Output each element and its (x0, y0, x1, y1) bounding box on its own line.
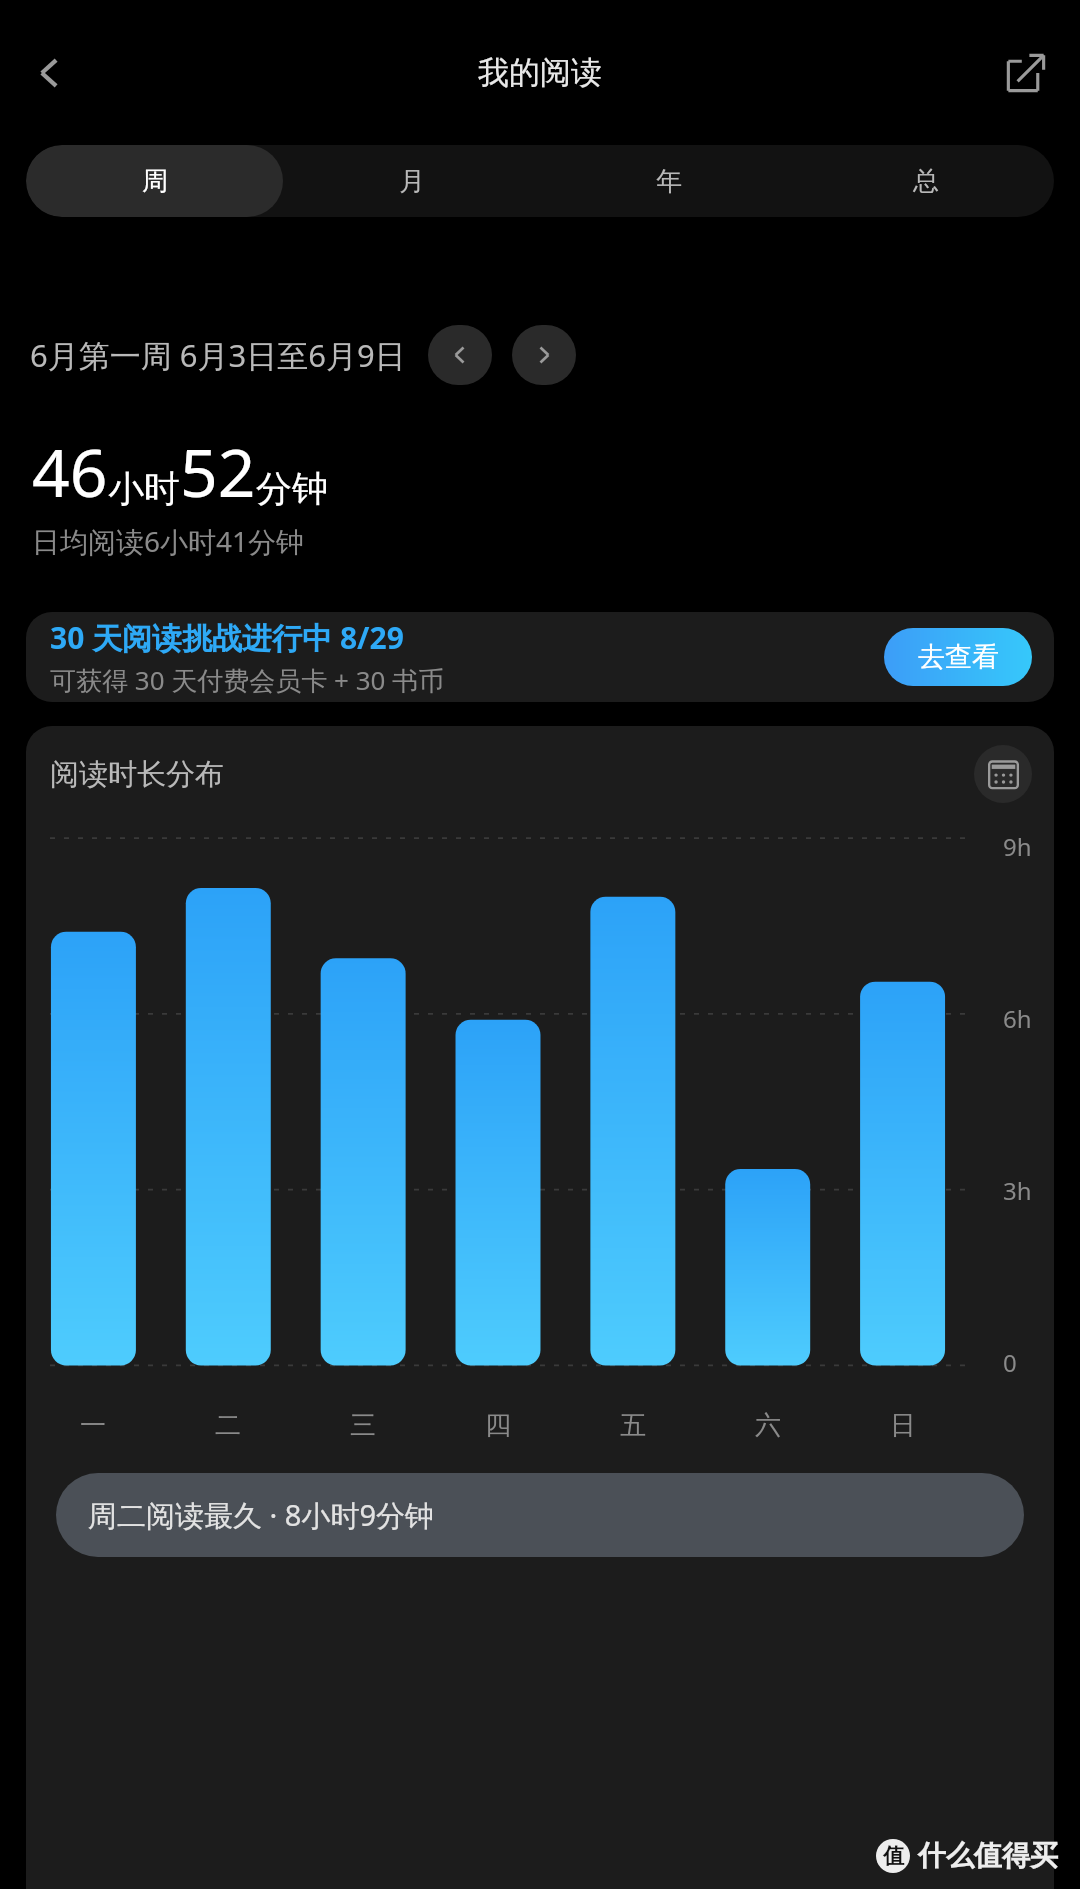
staticText: 6h (1003, 1002, 1032, 1035)
staticText: 二 (215, 1409, 241, 1442)
staticText: 我的阅读 (478, 53, 602, 92)
staticText: 30 天阅读挑战进行中 8/29 (50, 617, 404, 658)
staticText: 3h (1003, 1174, 1032, 1207)
button[interactable]: Back (14, 37, 86, 109)
staticText: 周 (142, 165, 168, 198)
button[interactable]: 总 (797, 145, 1054, 217)
button[interactable]: Previous week (428, 325, 492, 385)
staticText: 去查看 (918, 640, 999, 674)
staticText: 月 (399, 165, 425, 198)
staticText: 三 (350, 1409, 376, 1442)
staticText: 年 (656, 165, 682, 198)
staticText: 周二阅读最久 · 8小时9分钟 (88, 1495, 435, 1535)
staticText: 46 (32, 426, 108, 516)
button[interactable]: Share (988, 35, 1064, 111)
staticText: 小时 (108, 466, 180, 511)
button[interactable]: Next week (512, 325, 576, 385)
staticText: 六 (755, 1409, 781, 1442)
button[interactable]: 月 (283, 145, 540, 217)
staticText: 9h (1003, 830, 1032, 863)
button[interactable]: 年 (540, 145, 797, 217)
staticText: 日均阅读6小时41分钟 (32, 522, 305, 560)
staticText: 可获得 30 天付费会员卡 + 30 书币 (50, 662, 445, 698)
staticText: 值 (883, 1843, 904, 1869)
button[interactable]: 周 (26, 145, 283, 217)
button[interactable]: 去查看 (884, 628, 1032, 686)
button[interactable]: 周二阅读最久 · 8小时9分钟 (56, 1473, 1024, 1557)
staticText: 0 (1003, 1346, 1017, 1379)
staticText: 日 (890, 1409, 916, 1442)
staticText: 52 (180, 426, 256, 516)
staticText: 分钟 (256, 466, 328, 511)
staticText: 阅读时长分布 (50, 756, 224, 793)
staticText: 什么值得买 (918, 1838, 1058, 1873)
staticText: 五 (620, 1409, 646, 1442)
staticText: 一 (80, 1409, 106, 1442)
staticText: 四 (485, 1409, 511, 1442)
button[interactable]: 30 天阅读挑战进行中 8/29 (26, 612, 1054, 702)
staticText: 6月第一周 6月3日至6月9日 (30, 334, 406, 376)
button[interactable]: Calendar (974, 745, 1032, 803)
staticText: 总 (913, 165, 939, 198)
